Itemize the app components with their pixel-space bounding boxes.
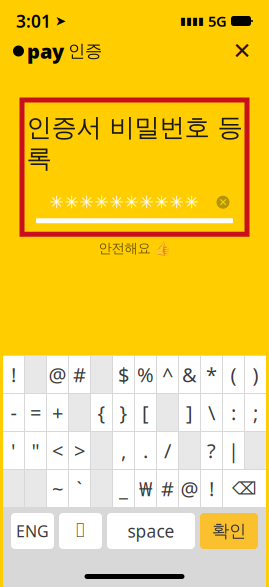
staticText: / [164,437,171,464]
staticText: ` [76,475,82,502]
button[interactable]: space [107,513,195,549]
button[interactable]: + [47,394,68,431]
button[interactable]: : [223,394,244,431]
staticText: ) [252,361,258,388]
staticText: { [97,399,105,426]
staticText: ^ [162,361,173,388]
staticText: > [74,437,85,464]
staticText: 인증 [68,40,102,62]
staticText: ? [207,437,216,464]
staticText: $ [118,361,129,388]
staticText: ] [186,399,193,426]
staticText: ENG [16,520,49,542]
button[interactable]: ` [69,470,90,507]
staticText: " [31,437,39,464]
staticText: ! [209,475,214,502]
button[interactable]: / [157,432,178,469]
button[interactable]: Backspace [223,470,266,507]
staticText: \ [208,399,215,426]
button[interactable]: ; [245,394,266,431]
button[interactable]: < [47,432,68,469]
staticText: ~ [52,475,63,502]
staticText: . [143,437,148,464]
button[interactable]: Clear password [213,192,233,212]
button[interactable]: [ [135,394,156,431]
staticText: 인증서 비밀번호 등록 [26,112,242,174]
staticText: 5G [204,11,231,31]
staticText: 3:01 [16,9,51,32]
staticText: ' [11,437,16,464]
button[interactable]: $ [113,356,134,393]
button[interactable]: \ [201,394,222,431]
button[interactable]: { [91,394,112,431]
button[interactable]: Switch keyboard [59,513,102,549]
button[interactable]: . [135,432,156,469]
staticText: ⌫ [232,479,257,498]
button[interactable]: @ [47,356,68,393]
staticText: + [52,399,63,426]
staticText: @ [48,361,66,388]
staticText: } [119,399,127,426]
staticText: # [73,361,86,388]
staticText: - [10,399,16,426]
staticText: @ [180,475,198,502]
button[interactable]: % [135,356,156,393]
staticText: _ [119,475,128,502]
staticText: , [121,437,126,464]
button[interactable]: _ [113,470,134,507]
staticText: ▮▮▮▮ [180,15,204,27]
staticText: ✕ [232,38,251,64]
button[interactable]: | [223,432,244,469]
button[interactable]: & [179,356,200,393]
button[interactable]: ] [179,394,200,431]
button[interactable]: ₩ [135,470,156,507]
staticText: ✳︎✳︎✳︎✳︎✳︎✳︎✳︎✳︎✳︎✳︎ [49,192,199,212]
button[interactable]: ( [223,356,244,393]
button[interactable]: ! [201,470,222,507]
staticText: ✕ [218,196,227,208]
button[interactable]: ? [201,432,222,469]
button[interactable]: > [69,432,90,469]
staticText: % [137,361,154,388]
button[interactable]: ! [3,356,24,393]
staticText: 안전해요 [98,240,150,257]
button[interactable]: , [113,432,134,469]
staticText: : [231,399,236,426]
staticText: pay [27,38,64,64]
staticText: # [161,475,174,502]
button[interactable]: ' [3,432,24,469]
button[interactable]: 확인 [200,513,258,549]
button[interactable]: ) [245,356,266,393]
staticText: space [127,519,174,542]
staticText: < [52,437,63,464]
button[interactable]: # [157,470,178,507]
staticText: ( [230,361,236,388]
button[interactable]: = [25,394,46,431]
button[interactable]: " [25,432,46,469]
staticText: [ [142,399,149,426]
button[interactable]: ~ [47,470,68,507]
button[interactable]: - [3,394,24,431]
button[interactable]: @ [179,470,200,507]
staticText: ➤ [51,13,66,28]
button[interactable]: ^ [157,356,178,393]
staticText: ⌷ [74,521,86,541]
button[interactable]: } [113,394,134,431]
button[interactable]: ENG [11,513,54,549]
button[interactable]: * [201,356,222,393]
staticText: * [206,361,217,388]
button[interactable]: # [69,356,90,393]
staticText: = [30,399,41,426]
staticText: ; [253,399,258,426]
button[interactable]: Close [227,36,257,66]
